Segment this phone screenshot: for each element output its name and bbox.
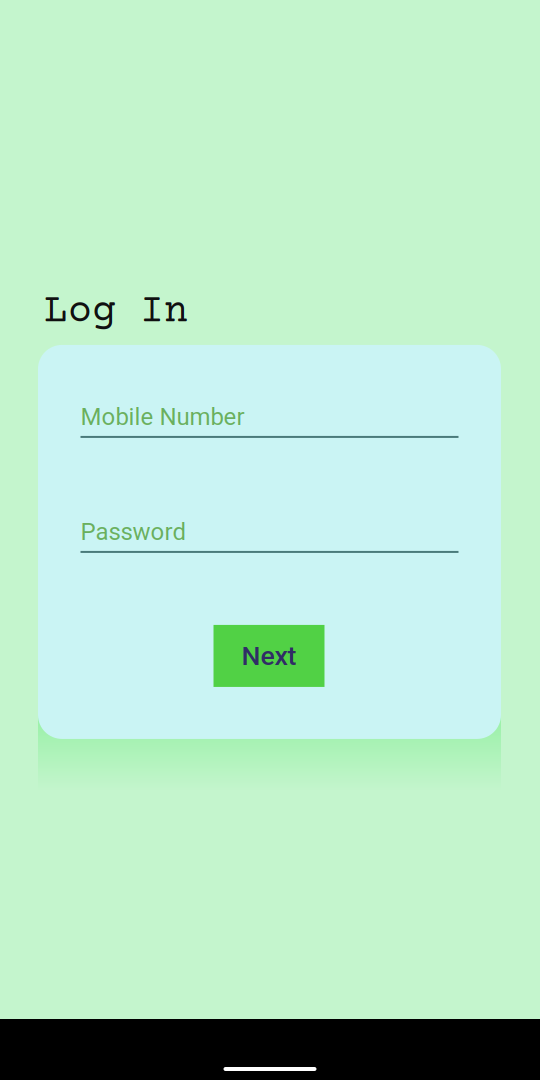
button[interactable]: Password [80,518,458,553]
staticText: Password [80,518,186,546]
staticText: Next [241,640,296,672]
button[interactable]: Mobile Number [80,403,458,438]
staticText: Mobile Number [80,403,244,431]
button[interactable]: Next [213,625,324,687]
staticText: Log In [44,290,188,335]
